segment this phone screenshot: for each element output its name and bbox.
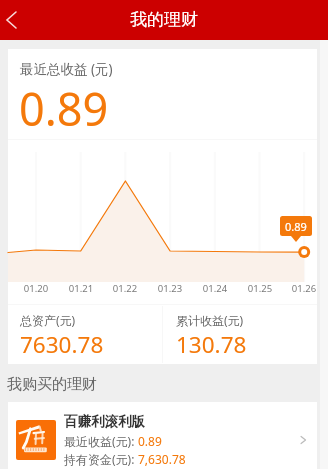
staticText: 130.78 [176,329,247,360]
button[interactable]: 百赚利滚利版 [8,402,317,469]
staticText: 0.89 [285,219,307,234]
staticText: 最近总收益 (元) [20,60,113,78]
staticText: 01.22 [109,282,141,295]
staticText: 百赚利滚利版 [64,413,145,430]
staticText: 01.21 [65,282,97,295]
staticText: 持有资金(元): [64,451,138,467]
staticText: 01.24 [199,282,231,295]
staticText: 01.20 [20,282,52,295]
staticText: 累计收益(元) [176,312,244,328]
staticText: 0.89 [138,433,162,449]
staticText: 最近收益(元): [64,433,138,449]
staticText: 01.26 [288,282,320,295]
staticText: 我购买的理财 [7,375,97,394]
staticText: 总资产(元) [20,312,76,328]
button[interactable]: Back [0,0,32,40]
staticText: 7630.78 [20,329,104,360]
staticText: 7,630.78 [138,451,186,467]
staticText: 我的理财 [130,9,198,30]
staticText: 01.23 [154,282,186,295]
staticText: 0.89 [19,78,109,139]
staticText: 01.25 [244,282,276,295]
